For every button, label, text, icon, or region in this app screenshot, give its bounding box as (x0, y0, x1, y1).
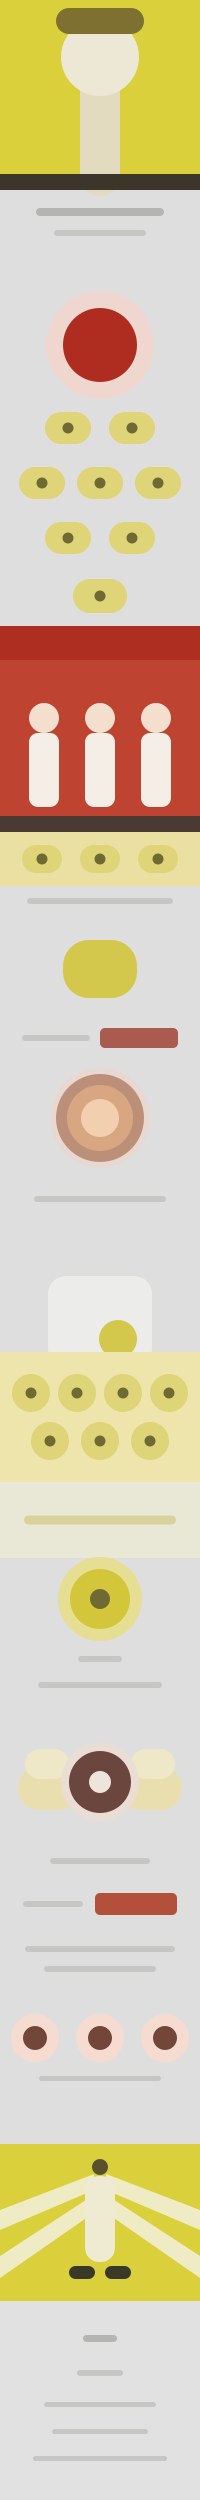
button[interactable]: Option (45, 522, 91, 554)
button[interactable]: Option (77, 467, 123, 499)
button[interactable]: Option (131, 1422, 169, 1460)
button[interactable]: Option (22, 845, 62, 873)
button[interactable]: Option (109, 412, 155, 444)
button[interactable]: Option (45, 412, 91, 444)
button[interactable]: Option (135, 467, 181, 499)
button[interactable]: Option (109, 522, 155, 554)
button[interactable]: Option (19, 467, 65, 499)
button[interactable]: Option (150, 1374, 188, 1412)
button[interactable]: Option (80, 845, 120, 873)
button[interactable]: Option (58, 1374, 96, 1412)
button[interactable]: Option (31, 1422, 69, 1460)
button[interactable]: Profile (141, 2014, 189, 2062)
button[interactable]: Profile (76, 2014, 124, 2062)
button[interactable]: Option (12, 1374, 50, 1412)
button[interactable]: Badge (63, 940, 137, 998)
button[interactable]: Highlighted action (100, 1028, 178, 1048)
button[interactable]: Featured option (73, 579, 127, 613)
button[interactable]: Highlighted action (95, 1893, 177, 1915)
button[interactable]: Profile (11, 2014, 59, 2062)
button[interactable]: Option (138, 845, 178, 873)
button[interactable]: Option (81, 1422, 119, 1460)
button[interactable]: Option (104, 1374, 142, 1412)
